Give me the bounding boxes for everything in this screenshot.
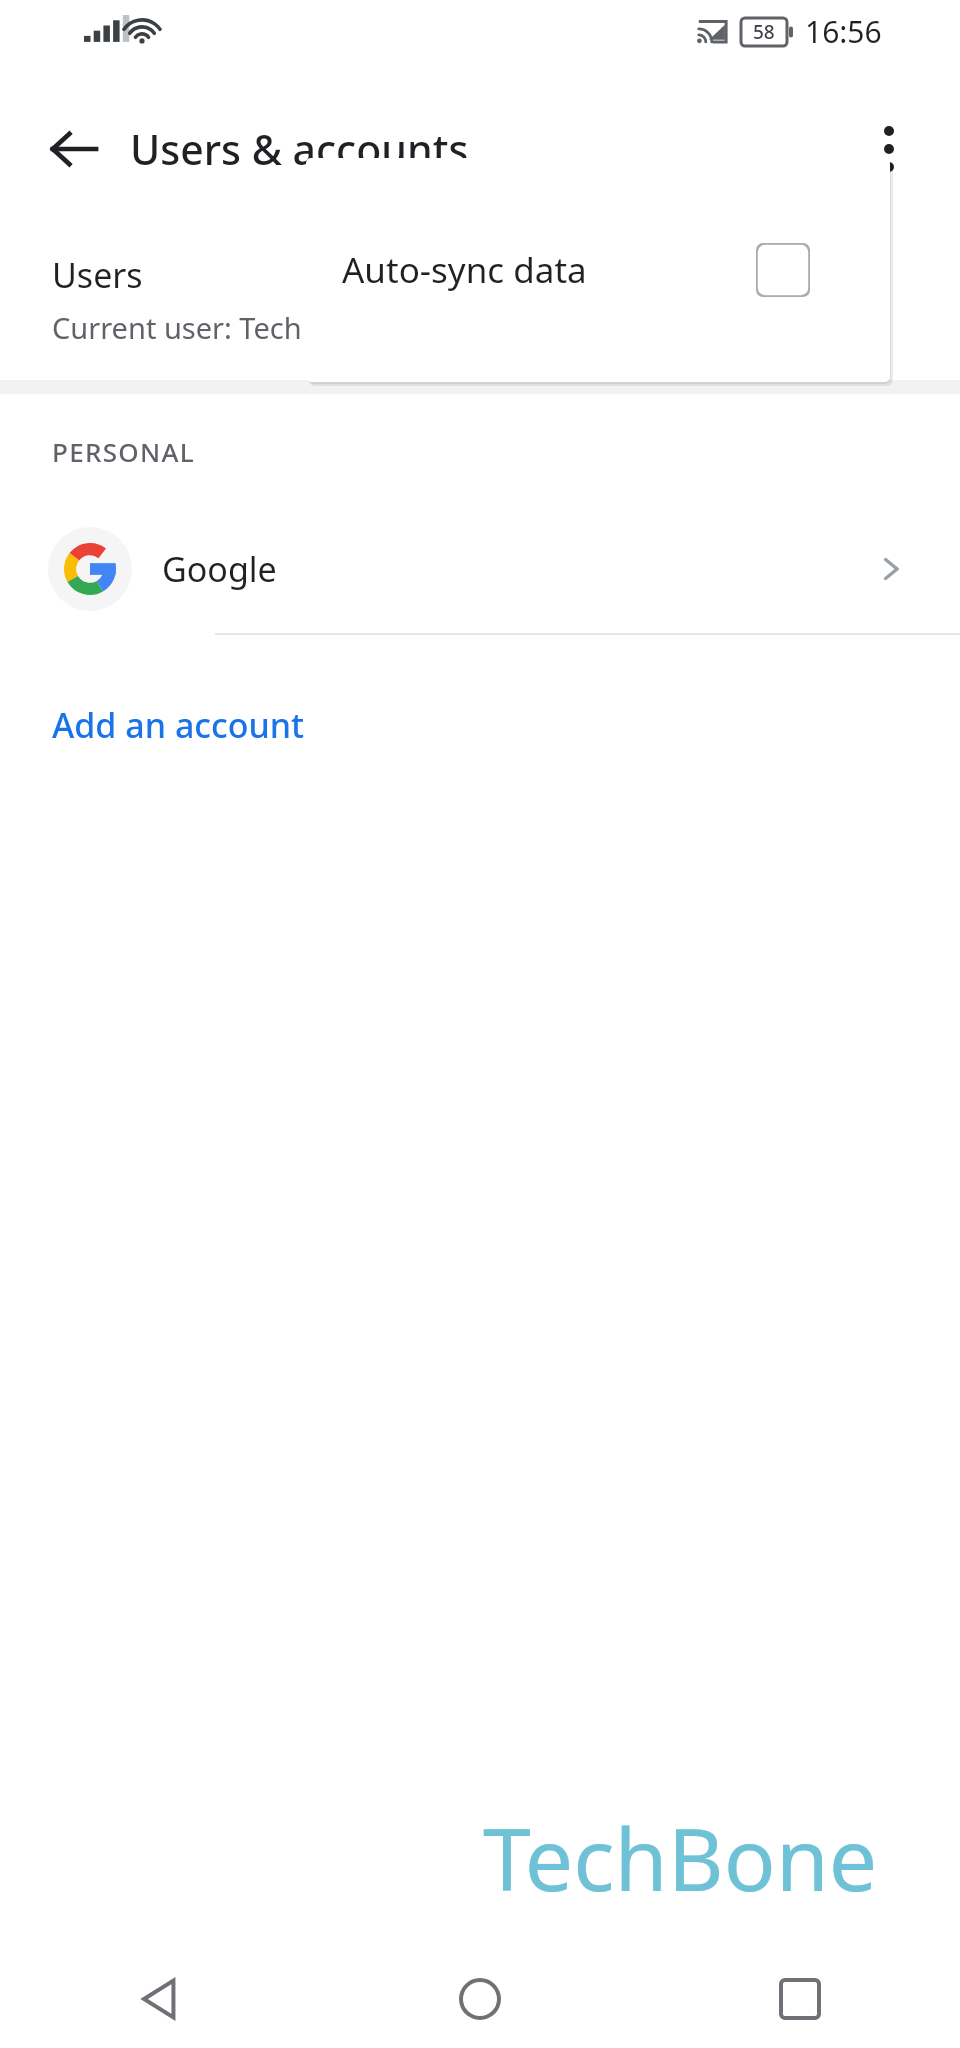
button[interactable]: Home (320, 1950, 640, 2048)
staticText: PERSONAL (52, 434, 195, 469)
staticText: Auto-sync data (342, 246, 587, 294)
button[interactable]: Users (0, 236, 960, 380)
staticText: Current user: Tech (52, 308, 302, 347)
button[interactable]: Auto-sync data (306, 158, 890, 382)
button[interactable]: More options (850, 110, 928, 188)
staticText: 16:56 (805, 11, 882, 52)
staticText: Add an account (52, 702, 305, 748)
button[interactable]: Recent apps (640, 1950, 960, 2048)
button[interactable]: Back (34, 109, 114, 189)
button[interactable]: Google (0, 505, 960, 633)
staticText: 58 (753, 19, 775, 45)
staticText: Google (162, 546, 277, 592)
button[interactable]: Back (0, 1950, 320, 2048)
button[interactable]: Add an account (0, 679, 960, 771)
staticText: Users (52, 252, 143, 298)
staticText: TechBone (483, 1799, 878, 1916)
staticText: Users & accounts (130, 121, 469, 177)
